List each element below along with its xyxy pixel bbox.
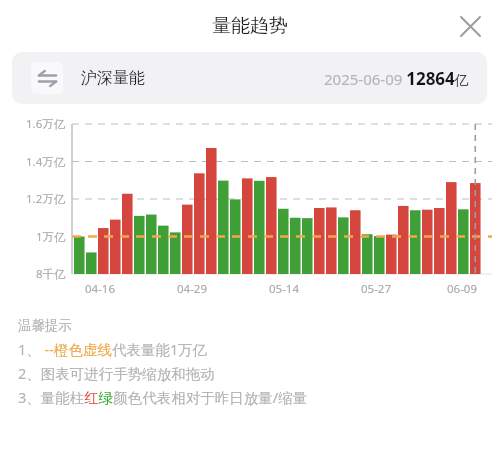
staticText: 2025-06-09 12864亿 [324,67,469,90]
staticText: 1.6万亿 [26,116,66,132]
staticText: 1万亿 [36,229,66,245]
staticText: 3、量能柱红绿颜色代表相对于昨日放量/缩量 [18,387,308,407]
staticText: 量能趋势 [212,14,288,38]
button[interactable]: 沪深量能 [12,52,487,104]
staticText: 沪深量能 [81,68,145,88]
staticText: 05-27 [361,281,392,297]
staticText: 温馨提示 [18,317,72,334]
staticText: 04-29 [177,281,208,297]
staticText: 04-16 [85,281,116,297]
button[interactable]: Close [451,7,489,45]
staticText: 1、 --橙色虚线代表量能1万亿 [18,339,208,359]
staticText: 06-09 [447,281,478,297]
staticText: 8千亿 [36,266,66,282]
staticText: 2、图表可进行手势缩放和拖动 [18,363,215,383]
staticText: 1.2万亿 [26,191,66,207]
staticText: 05-14 [269,281,300,297]
staticText: 1.4万亿 [26,154,66,170]
